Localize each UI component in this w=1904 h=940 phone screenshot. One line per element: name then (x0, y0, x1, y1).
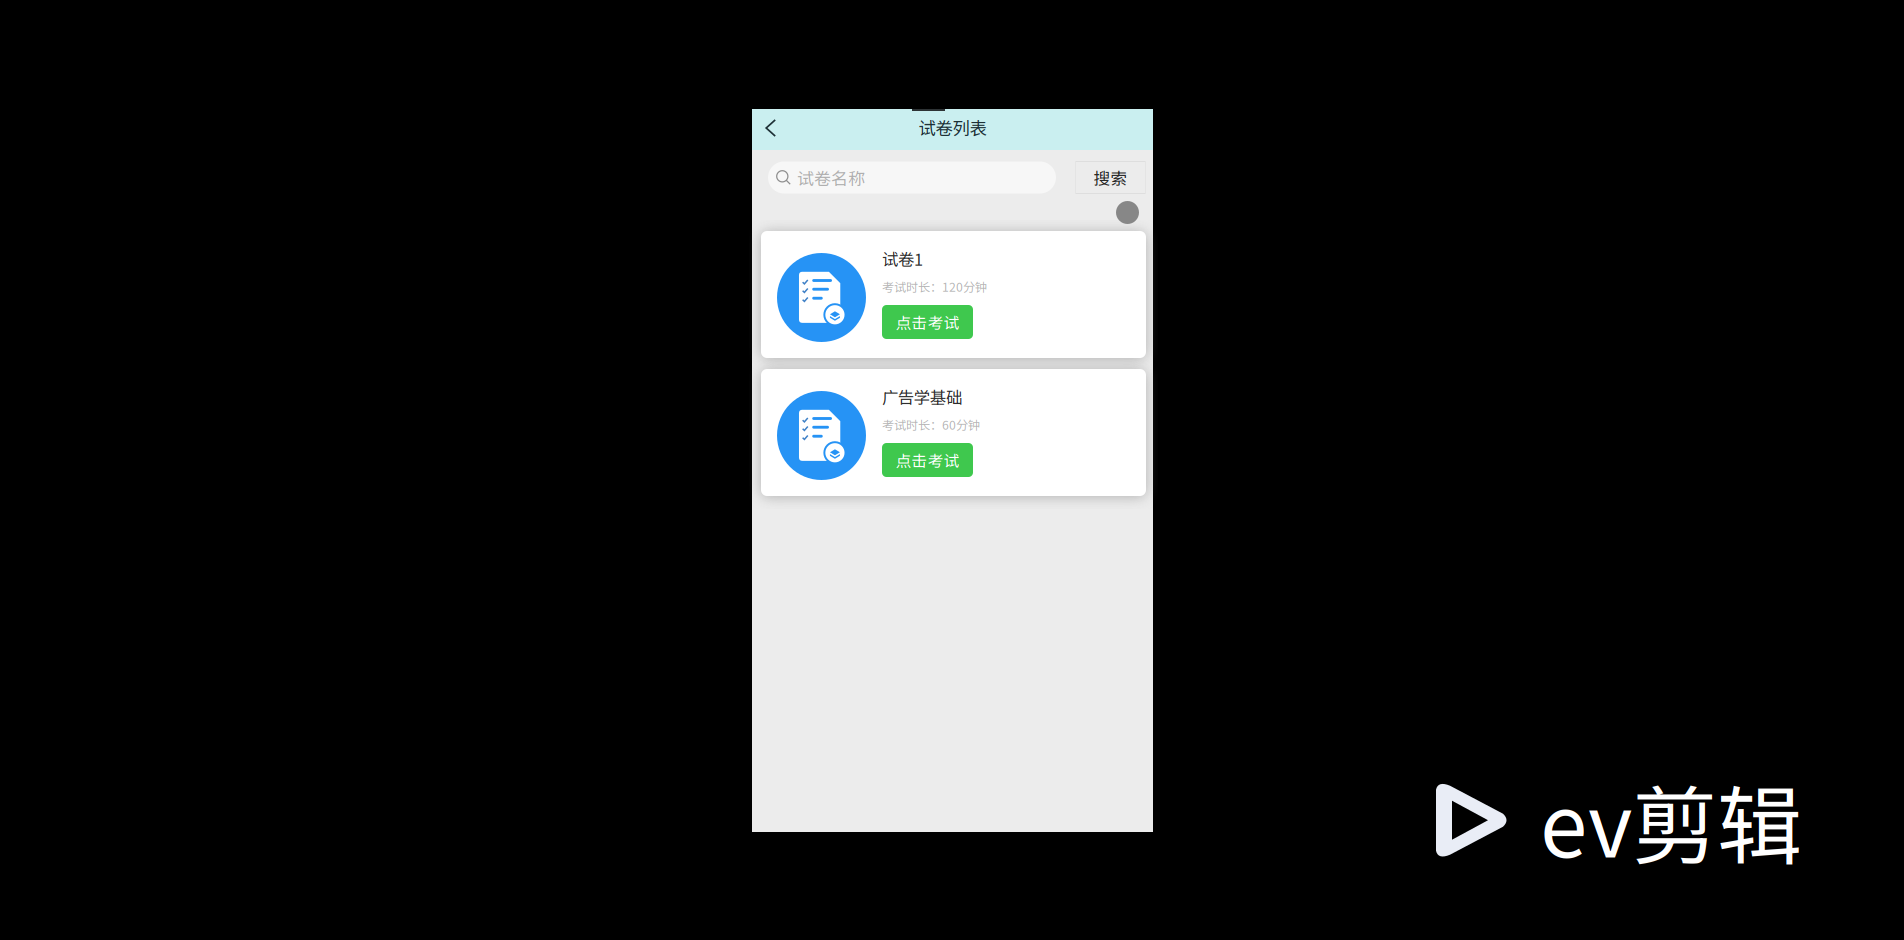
staticText: 考试时长：120分钟 (882, 278, 987, 295)
button[interactable]: 点击考试 (882, 443, 973, 477)
button[interactable]: 返回 (752, 109, 791, 150)
staticText: 点击考试 (895, 311, 959, 333)
button[interactable]: 试卷1 (761, 231, 1146, 358)
staticText: 试卷列表 (918, 115, 986, 140)
staticText: 点击考试 (895, 449, 959, 471)
staticText: 广告学基础 (882, 385, 962, 408)
staticText: ev剪辑 (1540, 758, 1802, 882)
button[interactable]: 搜索 (1075, 161, 1146, 194)
staticText: 考试时长：60分钟 (882, 416, 980, 433)
button[interactable]: 点击考试 (882, 305, 973, 339)
staticText: 试卷名称 (797, 165, 865, 190)
staticText: 试卷1 (882, 247, 923, 270)
button[interactable]: 广告学基础 (761, 369, 1146, 496)
staticText: 搜索 (1093, 165, 1127, 189)
